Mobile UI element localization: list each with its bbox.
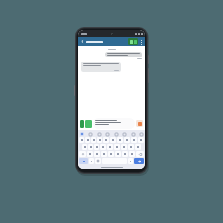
- button[interactable]: [94, 151, 100, 157]
- button[interactable]: More options: [140, 39, 143, 45]
- button[interactable]: [100, 144, 106, 150]
- button[interactable]: [131, 137, 137, 143]
- button[interactable]: Send message: [134, 158, 144, 164]
- button[interactable]: [115, 151, 121, 157]
- button[interactable]: [117, 137, 123, 143]
- button[interactable]: Language: [95, 158, 101, 164]
- button[interactable]: [91, 137, 96, 143]
- button[interactable]: [88, 144, 93, 150]
- button[interactable]: Keyboard tool 2: [97, 132, 101, 136]
- button[interactable]: Attach: [80, 120, 84, 128]
- button[interactable]: [114, 144, 120, 150]
- button[interactable]: [94, 144, 99, 150]
- button[interactable]: Keyboard tool 6: [131, 132, 135, 136]
- button[interactable]: Keyboard tool 1: [88, 132, 92, 136]
- button[interactable]: [81, 62, 121, 72]
- button[interactable]: Search: [80, 132, 84, 136]
- button[interactable]: Shift: [79, 151, 86, 157]
- button[interactable]: Sticker: [85, 120, 92, 128]
- button[interactable]: Backspace: [136, 151, 144, 157]
- button[interactable]: Comma: [89, 158, 94, 164]
- button[interactable]: Video call: [128, 38, 138, 45]
- button[interactable]: Keyboard tool 4: [114, 132, 118, 136]
- button[interactable]: Back: [80, 39, 85, 44]
- button[interactable]: [122, 151, 128, 157]
- button[interactable]: Keyboard tool 5: [122, 132, 126, 136]
- button[interactable]: [82, 144, 87, 150]
- button[interactable]: [87, 151, 93, 157]
- button[interactable]: Period: [128, 158, 133, 164]
- button[interactable]: [108, 151, 114, 157]
- button[interactable]: [97, 137, 102, 143]
- button[interactable]: [135, 144, 141, 150]
- button[interactable]: Keyboard tool 3: [105, 132, 109, 136]
- button[interactable]: [110, 137, 116, 143]
- button[interactable]: [124, 137, 130, 143]
- button[interactable]: [128, 144, 134, 150]
- button[interactable]: Symbols: [79, 158, 88, 164]
- button[interactable]: [103, 137, 109, 143]
- button[interactable]: [107, 144, 113, 150]
- button[interactable]: [121, 144, 127, 150]
- button[interactable]: Keyboard tool 7: [139, 132, 143, 136]
- button[interactable]: [129, 151, 135, 157]
- button[interactable]: [79, 137, 84, 143]
- button[interactable]: [93, 118, 135, 129]
- button[interactable]: [85, 137, 90, 143]
- button[interactable]: [138, 137, 144, 143]
- button[interactable]: [105, 52, 142, 57]
- button[interactable]: Send: [136, 120, 143, 127]
- button[interactable]: [101, 151, 107, 157]
